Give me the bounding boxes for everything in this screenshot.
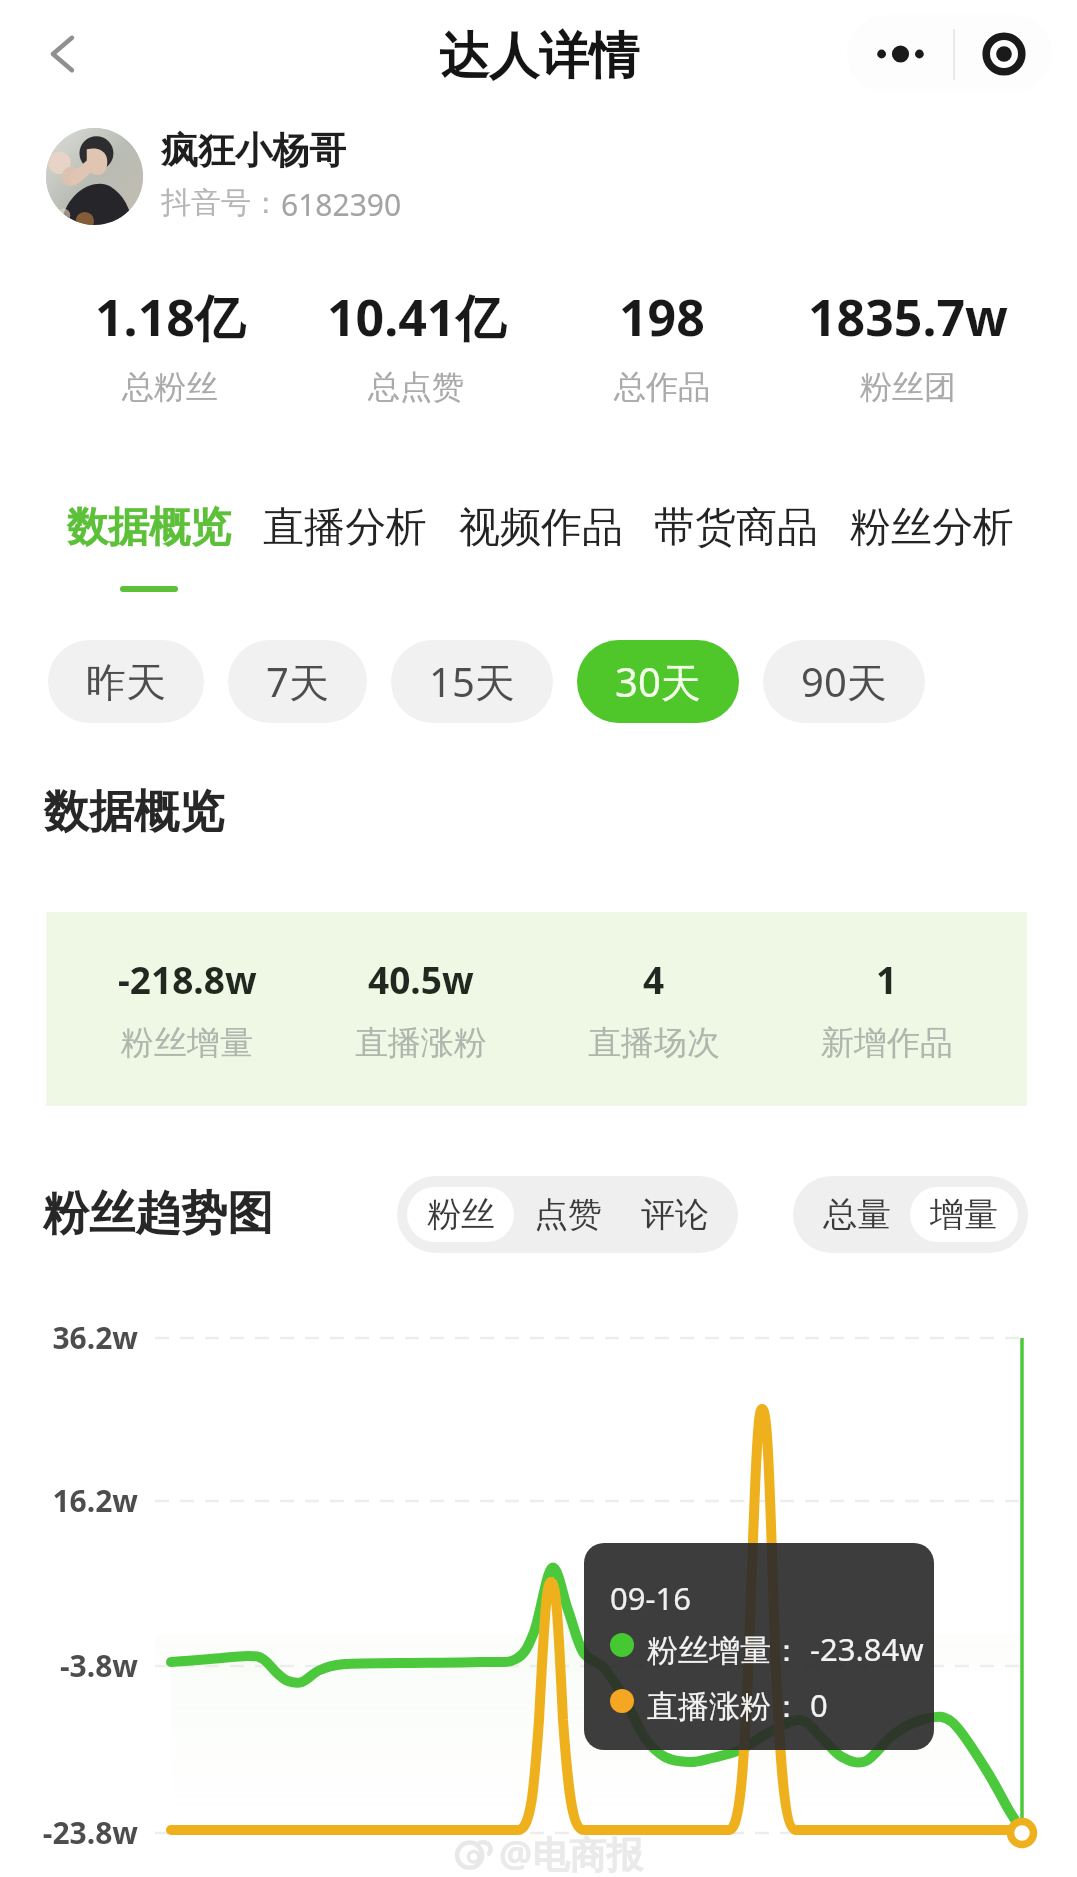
staticText: -218.8w xyxy=(118,954,257,1004)
staticText: 36.2w xyxy=(0,1317,138,1358)
staticText: 总点赞 xyxy=(368,367,464,407)
button[interactable]: 7天 xyxy=(228,640,367,723)
staticText: 直播场次 xyxy=(588,1022,720,1064)
staticText: 16.2w xyxy=(0,1480,138,1521)
staticText: 直播涨粉 xyxy=(355,1022,487,1064)
button[interactable]: 30天 xyxy=(577,640,739,723)
button[interactable]: Close mini program xyxy=(955,15,1052,93)
staticText: 粉丝增量 xyxy=(121,1022,253,1064)
staticText: 6182390 xyxy=(281,184,402,225)
staticText: 数据概览 xyxy=(67,502,231,554)
staticText: 新增作品 xyxy=(821,1022,953,1064)
button[interactable]: 带货商品 xyxy=(647,502,825,586)
button[interactable]: 疯狂小杨哥 xyxy=(46,126,402,226)
staticText: 评论 xyxy=(641,1193,709,1236)
staticText: -23.8w xyxy=(0,1812,138,1853)
button[interactable]: 15天 xyxy=(391,640,553,723)
button[interactable]: 总量 xyxy=(803,1187,910,1242)
button[interactable]: 粉丝 xyxy=(407,1187,514,1242)
staticText: 粉丝团 xyxy=(860,367,956,407)
staticText: 1 xyxy=(876,954,898,1004)
staticText: 1.18亿 xyxy=(95,283,245,351)
staticText: 增量 xyxy=(930,1193,998,1236)
button[interactable]: 数据概览 xyxy=(60,502,238,592)
staticText: 达人详情 xyxy=(439,25,639,88)
button[interactable]: 点赞 xyxy=(514,1187,621,1242)
staticText: 粉丝增量： -23.84w xyxy=(647,1628,924,1670)
staticText: 带货商品 xyxy=(654,502,818,554)
staticText: 15天 xyxy=(429,654,515,709)
button[interactable]: 昨天 xyxy=(48,640,204,723)
staticText: 40.5w xyxy=(368,954,474,1004)
staticText: @电商报 xyxy=(499,1828,644,1874)
staticText: 198 xyxy=(619,283,705,351)
staticText: 疯狂小杨哥 xyxy=(161,127,346,174)
button[interactable]: 评论 xyxy=(621,1187,728,1242)
staticText: 数据概览 xyxy=(44,784,224,841)
staticText: 总量 xyxy=(823,1193,891,1236)
button[interactable]: 直播分析 xyxy=(256,502,434,586)
button[interactable]: 90天 xyxy=(763,640,925,723)
staticText: 粉丝趋势图 xyxy=(43,1185,273,1243)
button[interactable]: 增量 xyxy=(910,1187,1018,1242)
staticText: 30天 xyxy=(615,654,701,709)
staticText: 粉丝 xyxy=(427,1193,495,1236)
staticText: 抖音号： xyxy=(161,184,281,222)
staticText: 直播分析 xyxy=(263,502,427,554)
button[interactable]: More options xyxy=(847,15,953,93)
staticText: 7天 xyxy=(266,654,329,709)
staticText: 总粉丝 xyxy=(122,367,218,407)
staticText: -3.8w xyxy=(0,1645,138,1686)
button[interactable]: Back xyxy=(35,26,91,82)
staticText: 昨天 xyxy=(86,657,166,707)
staticText: 总作品 xyxy=(614,367,710,407)
staticText: 09-16 xyxy=(610,1577,691,1619)
staticText: 90天 xyxy=(801,654,887,709)
staticText: 10.41亿 xyxy=(327,283,506,351)
staticText: 粉丝分析 xyxy=(850,502,1014,554)
staticText: 4 xyxy=(643,954,665,1004)
staticText: 1835.7w xyxy=(808,283,1008,351)
staticText: 直播涨粉： 0 xyxy=(647,1684,828,1726)
staticText: 视频作品 xyxy=(459,502,623,554)
button[interactable]: 粉丝分析 xyxy=(843,502,1021,586)
button[interactable]: 视频作品 xyxy=(452,502,630,586)
staticText: 点赞 xyxy=(534,1193,602,1236)
